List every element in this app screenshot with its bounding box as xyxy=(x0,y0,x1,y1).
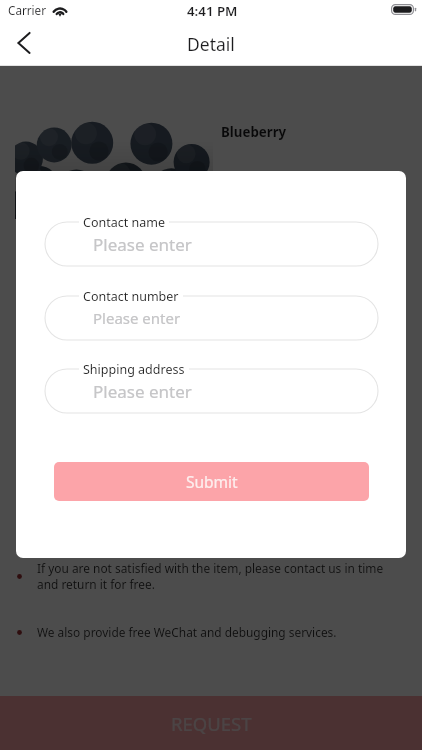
staticText: Please enter xyxy=(93,308,181,328)
button[interactable]: Back xyxy=(0,22,44,66)
staticText: We also provide free WeChat and debuggin… xyxy=(37,624,389,640)
staticText: 4:41 PM xyxy=(187,2,238,20)
staticText: Contact number xyxy=(83,288,179,305)
staticText: Shipping address xyxy=(83,361,185,378)
staticText: REQUEST xyxy=(171,711,252,736)
staticText: Please enter xyxy=(93,380,192,403)
staticText: Contact name xyxy=(83,214,165,231)
staticText: Submit xyxy=(186,471,238,492)
button[interactable]: Please enter xyxy=(45,369,378,413)
button[interactable]: Submit xyxy=(54,462,369,501)
staticText: Blueberry xyxy=(221,123,287,141)
staticText: Please enter xyxy=(93,233,192,256)
button[interactable]: Please enter xyxy=(45,222,378,266)
button[interactable]: Please enter xyxy=(45,296,378,340)
staticText: If you are not satisfied with the item, … xyxy=(37,560,389,593)
staticText: Detail xyxy=(187,32,235,56)
staticText: Carrier xyxy=(8,2,47,18)
